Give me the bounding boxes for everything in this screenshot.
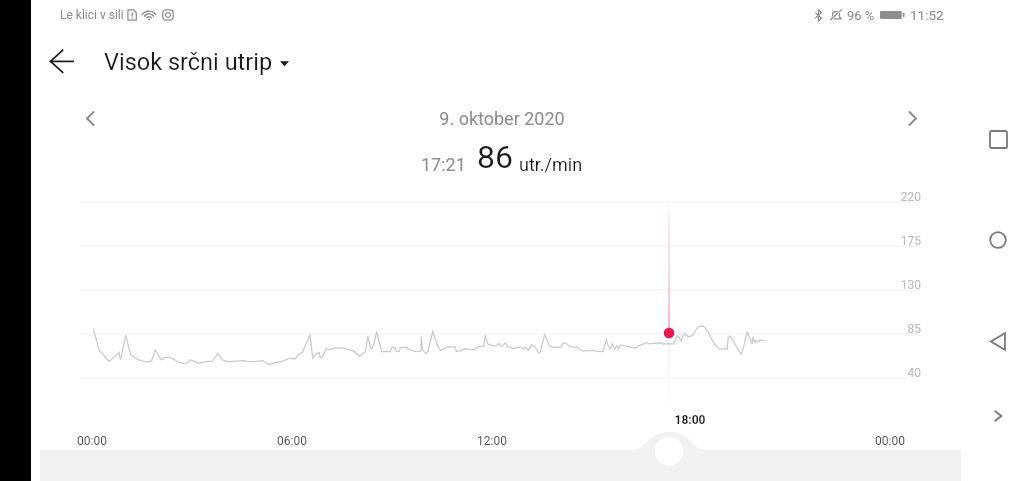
button[interactable]: Back [978,321,1018,361]
staticText: 85 [840,322,921,336]
staticText: 17:21 [421,154,466,175]
button[interactable]: Previous day [75,103,105,133]
staticText: 06:00 [252,434,332,448]
staticText: 18:00 [650,413,730,427]
staticText: Visok srčni utrip [104,48,273,76]
staticText: 11:52 [910,7,944,23]
button[interactable]: Home [978,220,1018,260]
button[interactable]: Visok srčni utrip [104,45,289,79]
button[interactable]: Recent apps [978,119,1018,159]
staticText: 96 % [847,8,875,23]
staticText: 130 [840,278,921,292]
staticText: utr./min [519,154,583,175]
button[interactable]: Back [38,38,86,86]
staticText: 220 [840,190,921,204]
staticText: Le klici v sili [60,8,124,22]
staticText: 00:00 [850,434,930,448]
staticText: 86 [477,138,513,176]
staticText: 12:00 [452,434,532,448]
staticText: 00:00 [52,434,132,448]
button[interactable]: Expand panel [978,396,1018,436]
button[interactable]: Measure heart rate [655,437,683,465]
staticText: 175 [840,234,921,248]
button[interactable]: Next day [897,103,927,133]
staticText: 9. oktober 2020 [302,108,702,129]
staticText: 40 [840,366,921,380]
